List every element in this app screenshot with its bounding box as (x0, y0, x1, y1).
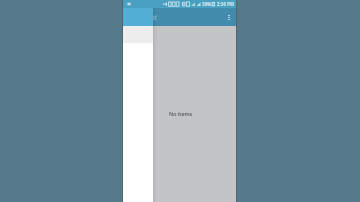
staticText: 36% (202, 1, 212, 7)
staticText: Account (133, 13, 158, 21)
staticText: No items (169, 110, 193, 117)
button[interactable]: More options (221, 8, 236, 26)
staticText: 2:36 PM (217, 1, 235, 7)
button[interactable] (123, 0, 153, 202)
